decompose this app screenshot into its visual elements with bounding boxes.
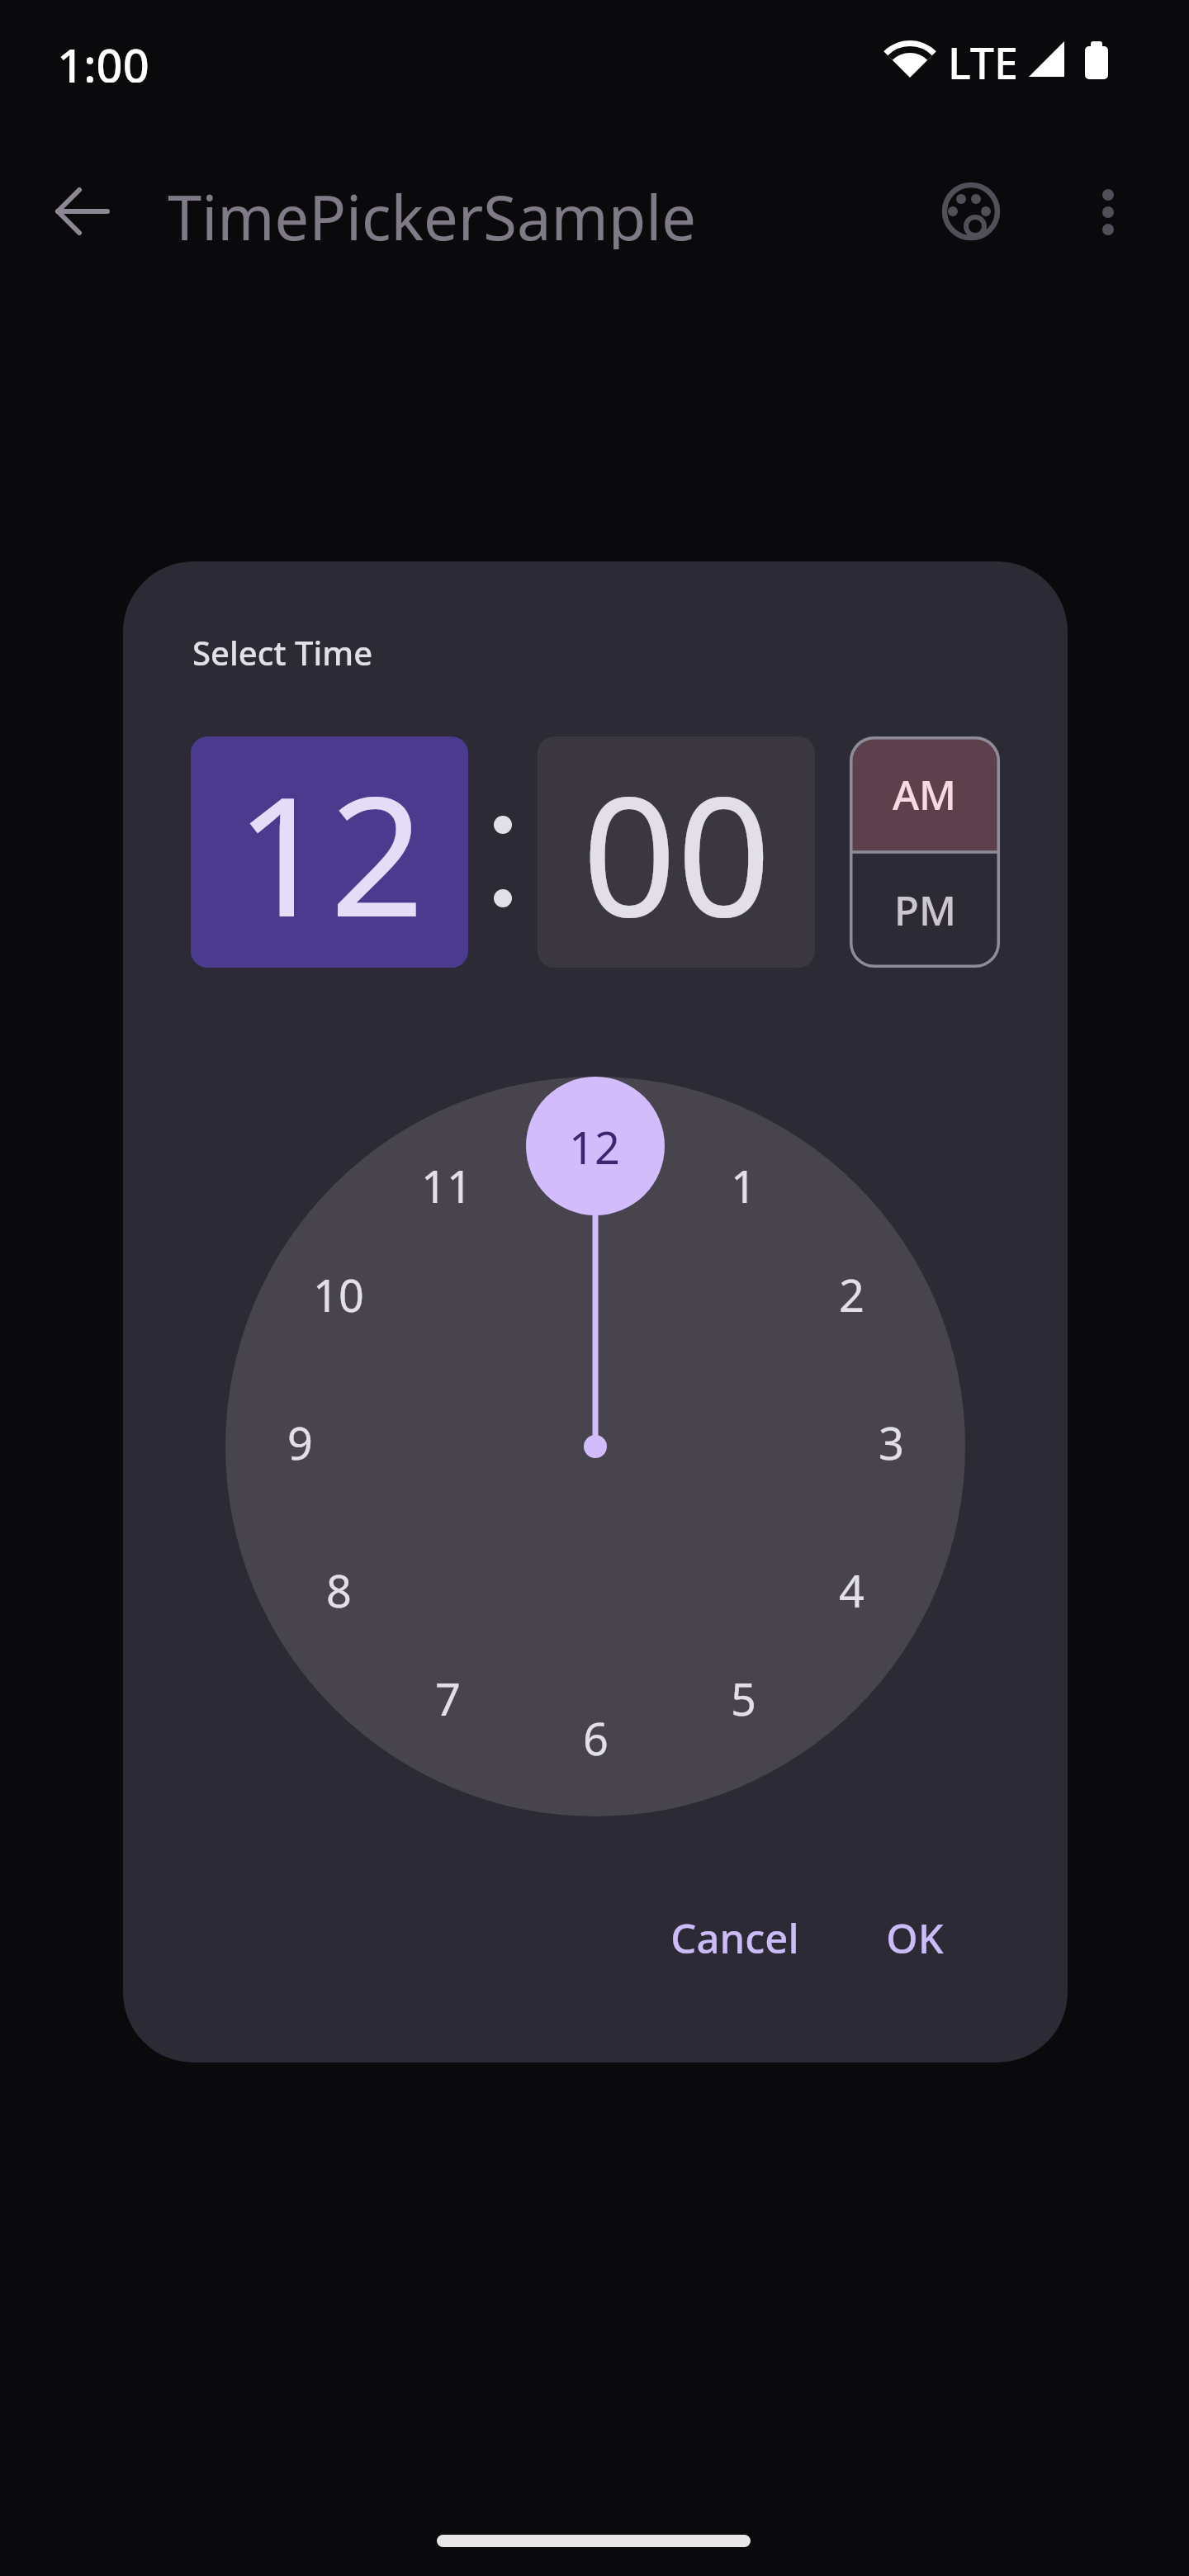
button[interactable]: Cancel [636, 1892, 834, 1983]
staticText: 3 [879, 1412, 904, 1473]
button[interactable] [48, 177, 117, 246]
staticText: 9 [287, 1412, 313, 1473]
button[interactable]: 00 [538, 736, 815, 968]
staticText: TimePickerSample [168, 175, 697, 249]
staticText: Cancel [670, 1911, 799, 1966]
staticText: 11 [421, 1155, 472, 1216]
button[interactable] [1073, 177, 1143, 246]
staticText: 12 [569, 1116, 620, 1177]
button[interactable]: PM [850, 852, 1000, 968]
staticText: 12 [235, 740, 424, 964]
staticText: 2 [839, 1264, 865, 1325]
staticText: 4 [839, 1560, 865, 1621]
button[interactable]: AM [850, 736, 1000, 852]
staticText: PM [894, 883, 956, 938]
staticText: 10 [313, 1264, 364, 1325]
button[interactable]: 12 [191, 736, 468, 968]
staticText: 1:00 [57, 33, 149, 83]
staticText: AM [893, 767, 957, 822]
staticText: 00 [582, 740, 771, 964]
staticText: 8 [326, 1560, 352, 1621]
staticText: 7 [435, 1668, 461, 1729]
staticText: Select Time [192, 630, 373, 675]
staticText: LTE [948, 33, 1018, 83]
button[interactable]: OK [853, 1892, 977, 1983]
button[interactable] [936, 177, 1006, 246]
staticText: 6 [583, 1707, 609, 1769]
staticText: 5 [731, 1668, 756, 1729]
staticText: OK [886, 1911, 944, 1966]
staticText: 1 [731, 1155, 756, 1216]
